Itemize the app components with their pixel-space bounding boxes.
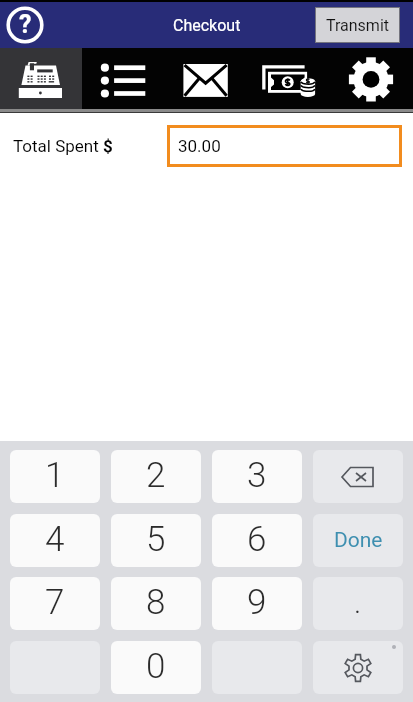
button[interactable]: Done bbox=[313, 514, 403, 567]
staticText: $ bbox=[103, 136, 113, 156]
button[interactable]: 2 bbox=[111, 450, 201, 503]
button[interactable]: Register bbox=[0, 48, 82, 109]
button[interactable]: 30.00 bbox=[167, 125, 402, 167]
button[interactable]: Transmit bbox=[316, 8, 399, 42]
staticText: Transmit bbox=[326, 16, 390, 35]
button[interactable]: Help bbox=[3, 3, 47, 47]
button[interactable]: 5 bbox=[111, 514, 201, 567]
staticText: ? bbox=[19, 10, 32, 39]
button[interactable]: 7 bbox=[10, 577, 100, 630]
staticText: 2 bbox=[146, 455, 166, 496]
staticText: 4 bbox=[45, 519, 65, 560]
button[interactable]: 1 bbox=[10, 450, 100, 503]
staticText: 1 bbox=[45, 455, 65, 496]
staticText: 6 bbox=[247, 519, 267, 560]
staticText: 0 bbox=[146, 646, 166, 687]
staticText: 5 bbox=[146, 519, 166, 560]
staticText: Checkout bbox=[173, 16, 241, 35]
button[interactable]: Payments bbox=[247, 48, 330, 109]
button[interactable]: 0 bbox=[111, 641, 201, 694]
staticText: 3 bbox=[247, 455, 267, 496]
button[interactable]: Settings bbox=[330, 48, 413, 109]
staticText: Done bbox=[334, 528, 383, 553]
button[interactable]: Delete bbox=[313, 450, 403, 503]
staticText: 30.00 bbox=[178, 136, 221, 156]
button[interactable]: 4 bbox=[10, 514, 100, 567]
staticText: 9 bbox=[247, 582, 267, 623]
button[interactable]: Messages bbox=[164, 48, 247, 109]
staticText: 8 bbox=[146, 582, 166, 623]
button[interactable]: Orders bbox=[82, 48, 164, 109]
button[interactable]: 6 bbox=[212, 514, 302, 567]
button[interactable]: 8 bbox=[111, 577, 201, 630]
staticText: 7 bbox=[45, 582, 65, 623]
staticText: . bbox=[354, 585, 362, 620]
staticText: Total Spent bbox=[13, 136, 103, 156]
button[interactable]: . bbox=[313, 577, 403, 630]
button[interactable]: 3 bbox=[212, 450, 302, 503]
button[interactable]: 9 bbox=[212, 577, 302, 630]
button[interactable]: Keyboard settings bbox=[313, 641, 403, 694]
